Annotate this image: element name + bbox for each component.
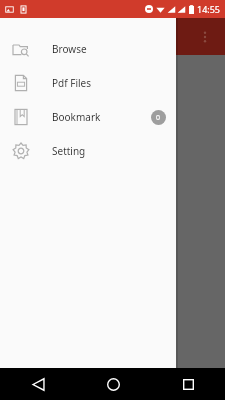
button[interactable]: Home xyxy=(99,370,127,398)
staticText: Browse xyxy=(52,42,87,56)
staticText: 14:55 xyxy=(197,3,221,15)
button[interactable]: Recents xyxy=(174,370,202,398)
staticText: 0 xyxy=(156,113,161,123)
staticText: Pdf Files xyxy=(52,76,92,90)
button[interactable]: More options xyxy=(194,26,216,48)
button[interactable]: Browse xyxy=(0,32,176,66)
button[interactable]: Pdf Files xyxy=(0,66,176,100)
staticText: Bookmark xyxy=(52,110,101,124)
button[interactable]: Bookmark xyxy=(0,100,176,134)
button[interactable]: Back xyxy=(24,370,52,398)
button[interactable]: Setting xyxy=(0,134,176,168)
staticText: Setting xyxy=(52,144,86,158)
